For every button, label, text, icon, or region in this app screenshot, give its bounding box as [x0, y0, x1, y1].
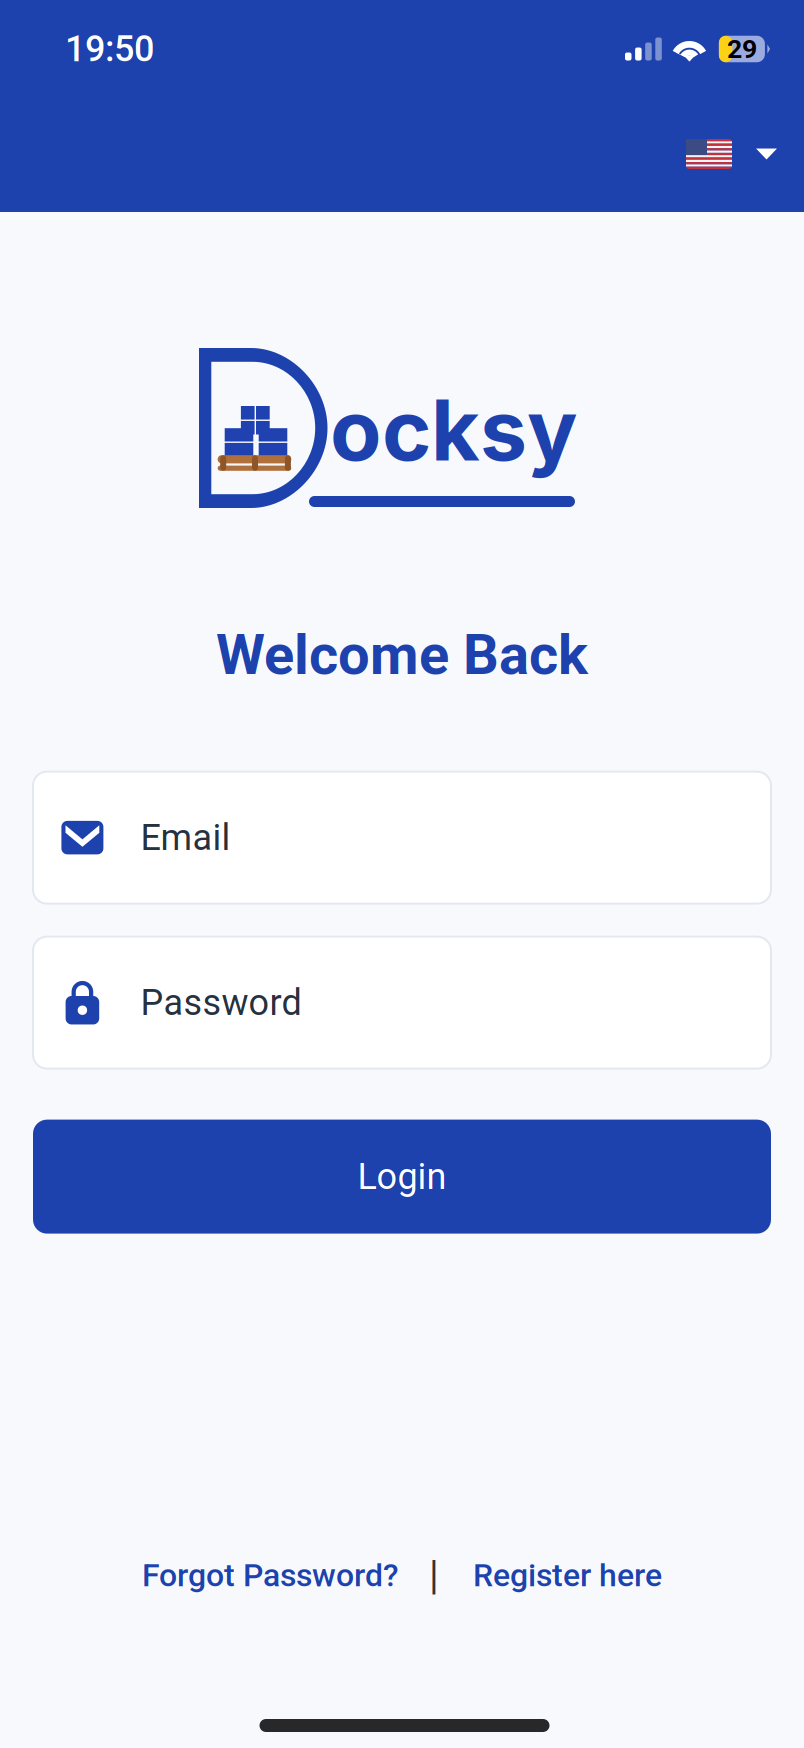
- button[interactable]: Register here: [473, 1550, 662, 1600]
- staticText: |: [429, 1552, 439, 1599]
- button[interactable]: Password: [33, 937, 771, 1069]
- staticText: Forgot Password?: [142, 1556, 399, 1594]
- staticText: 29: [727, 33, 757, 65]
- staticText: Register here: [473, 1556, 662, 1594]
- staticText: Email: [140, 816, 230, 859]
- staticText: 19:50: [65, 28, 154, 70]
- button[interactable]: Select language: [676, 127, 787, 181]
- staticText: Password: [140, 981, 301, 1024]
- staticText: Login: [357, 1155, 446, 1198]
- button[interactable]: Login: [33, 1120, 771, 1234]
- staticText: Welcome Back: [216, 622, 588, 688]
- staticText: ocksy: [330, 379, 578, 481]
- button[interactable]: Forgot Password?: [142, 1550, 399, 1600]
- button[interactable]: Email: [33, 772, 771, 904]
